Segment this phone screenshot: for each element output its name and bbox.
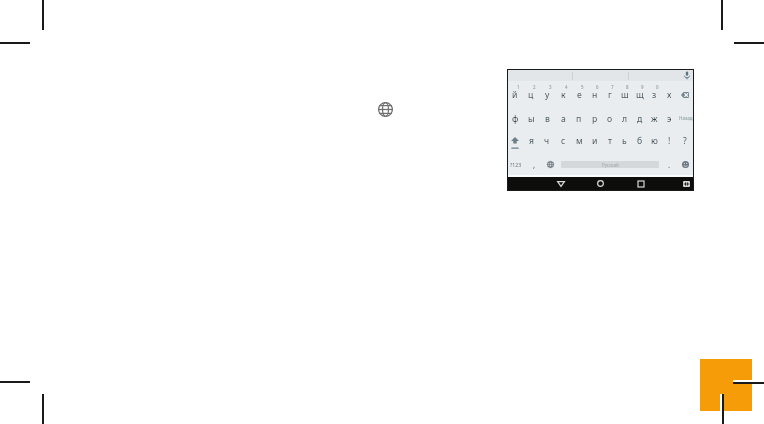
staticText: в bbox=[545, 113, 550, 125]
staticText: ц bbox=[528, 89, 534, 101]
button[interactable]: ж bbox=[647, 111, 662, 127]
staticText: д bbox=[637, 113, 643, 125]
staticText: . bbox=[668, 159, 671, 170]
button[interactable]: 0 bbox=[647, 87, 662, 103]
button[interactable]: и bbox=[587, 133, 602, 149]
button[interactable]: Назад bbox=[677, 111, 692, 127]
staticText: 5 bbox=[581, 84, 584, 90]
staticText: г bbox=[608, 89, 612, 101]
staticText: 0 bbox=[656, 84, 659, 90]
button[interactable]: 2 bbox=[523, 87, 539, 103]
staticText: 2 bbox=[533, 84, 536, 90]
button[interactable]: б bbox=[632, 133, 647, 149]
button[interactable]: т bbox=[602, 133, 617, 149]
button[interactable]: Русский bbox=[561, 161, 659, 168]
button[interactable]: 8 bbox=[617, 87, 632, 103]
button[interactable]: м bbox=[571, 133, 587, 149]
button[interactable]: э bbox=[662, 111, 677, 127]
button[interactable]: Home bbox=[596, 177, 605, 190]
button[interactable]: Change keyboard bbox=[682, 177, 691, 190]
staticText: р bbox=[592, 113, 598, 125]
button[interactable]: ! bbox=[662, 133, 677, 149]
staticText: а bbox=[561, 113, 566, 125]
staticText: ! bbox=[668, 135, 671, 147]
button[interactable]: ю bbox=[647, 133, 662, 149]
button[interactable]: Back bbox=[556, 177, 565, 190]
staticText: щ bbox=[636, 89, 644, 101]
button[interactable]: х bbox=[662, 87, 677, 103]
staticText: й bbox=[512, 89, 518, 101]
staticText: ш bbox=[621, 89, 629, 101]
button[interactable]: Emoji bbox=[678, 156, 692, 172]
staticText: х bbox=[667, 89, 672, 101]
button[interactable]: ф bbox=[507, 111, 523, 127]
staticText: 1 bbox=[517, 84, 520, 90]
staticText: ю bbox=[651, 135, 658, 147]
button[interactable]: п bbox=[571, 111, 587, 127]
staticText: у bbox=[545, 89, 550, 101]
staticText: ы bbox=[528, 113, 535, 125]
button[interactable]: ь bbox=[617, 133, 632, 149]
staticText: ?123 bbox=[510, 161, 522, 168]
staticText: ч bbox=[544, 135, 550, 147]
button[interactable]: Voice input bbox=[681, 70, 693, 81]
staticText: л bbox=[622, 113, 628, 125]
button[interactable]: с bbox=[555, 133, 571, 149]
staticText: о bbox=[607, 113, 613, 125]
staticText: 7 bbox=[611, 84, 614, 90]
staticText: ь bbox=[622, 135, 627, 147]
staticText: ? bbox=[683, 135, 687, 147]
button[interactable]: 1 bbox=[507, 87, 523, 103]
button[interactable]: д bbox=[632, 111, 647, 127]
button[interactable]: . bbox=[662, 156, 676, 172]
staticText: з bbox=[652, 89, 657, 101]
staticText: б bbox=[637, 135, 643, 147]
button[interactable]: ы bbox=[523, 111, 539, 127]
button[interactable]: а bbox=[555, 111, 571, 127]
button[interactable]: 4 bbox=[555, 87, 571, 103]
staticText: э bbox=[667, 113, 672, 125]
staticText: ж bbox=[651, 113, 658, 125]
button[interactable]: в bbox=[539, 111, 555, 127]
staticText: н bbox=[592, 89, 598, 101]
staticText: и bbox=[592, 135, 598, 147]
staticText: т bbox=[608, 135, 612, 147]
staticText: 8 bbox=[626, 84, 629, 90]
button[interactable]: Switch language bbox=[543, 156, 557, 172]
staticText: 6 bbox=[596, 84, 599, 90]
button[interactable]: ч bbox=[539, 133, 555, 149]
button[interactable]: Shift bbox=[507, 133, 523, 149]
button[interactable]: Backspace bbox=[677, 87, 692, 103]
staticText: с bbox=[561, 135, 566, 147]
staticText: 3 bbox=[549, 84, 552, 90]
button[interactable]: я bbox=[523, 133, 539, 149]
button[interactable]: Symbols bbox=[507, 156, 525, 172]
button[interactable]: 7 bbox=[602, 87, 617, 103]
button[interactable]: Recent apps bbox=[636, 177, 645, 190]
button[interactable]: 5 bbox=[571, 87, 587, 103]
staticText: к bbox=[561, 89, 566, 101]
staticText: 4 bbox=[565, 84, 568, 90]
staticText: Назад bbox=[679, 115, 693, 121]
button[interactable]: 9 bbox=[632, 87, 647, 103]
staticText: Русский bbox=[602, 162, 619, 168]
staticText: м bbox=[576, 135, 583, 147]
button[interactable]: 6 bbox=[587, 87, 602, 103]
staticText: е bbox=[577, 89, 582, 101]
button[interactable]: о bbox=[602, 111, 617, 127]
button[interactable]: Switch keyboard language bbox=[377, 101, 393, 117]
staticText: п bbox=[576, 113, 582, 125]
staticText: , bbox=[533, 159, 536, 170]
button[interactable]: л bbox=[617, 111, 632, 127]
staticText: я bbox=[529, 135, 534, 147]
button[interactable]: 3 bbox=[539, 87, 555, 103]
staticText: 9 bbox=[641, 84, 644, 90]
button[interactable]: р bbox=[587, 111, 602, 127]
button[interactable]: ? bbox=[677, 133, 692, 149]
button[interactable]: , bbox=[527, 156, 541, 172]
staticText: ф bbox=[512, 113, 519, 125]
